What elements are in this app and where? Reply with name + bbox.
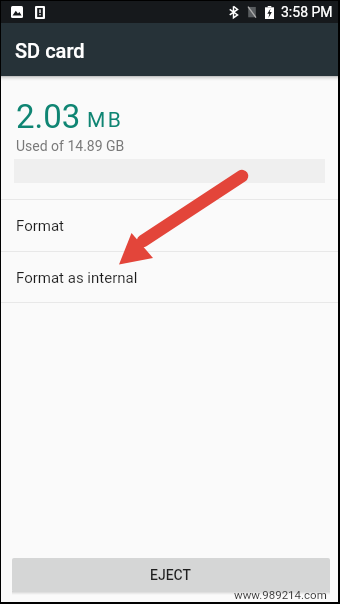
- staticText: Format: [16, 217, 64, 235]
- button[interactable]: EJECT: [12, 558, 330, 592]
- staticText: 3:58 PM: [281, 4, 333, 20]
- staticText: Used of 14.89 GB: [16, 138, 125, 154]
- staticText: MB: [87, 108, 124, 133]
- button[interactable]: Format: [1, 200, 338, 251]
- staticText: www.989214.com: [234, 588, 327, 601]
- staticText: Format as internal: [16, 269, 138, 287]
- staticText: SD card: [15, 39, 85, 62]
- staticText: EJECT: [150, 567, 192, 583]
- staticText: 2.03: [16, 97, 81, 136]
- button[interactable]: Format as internal: [1, 252, 338, 303]
